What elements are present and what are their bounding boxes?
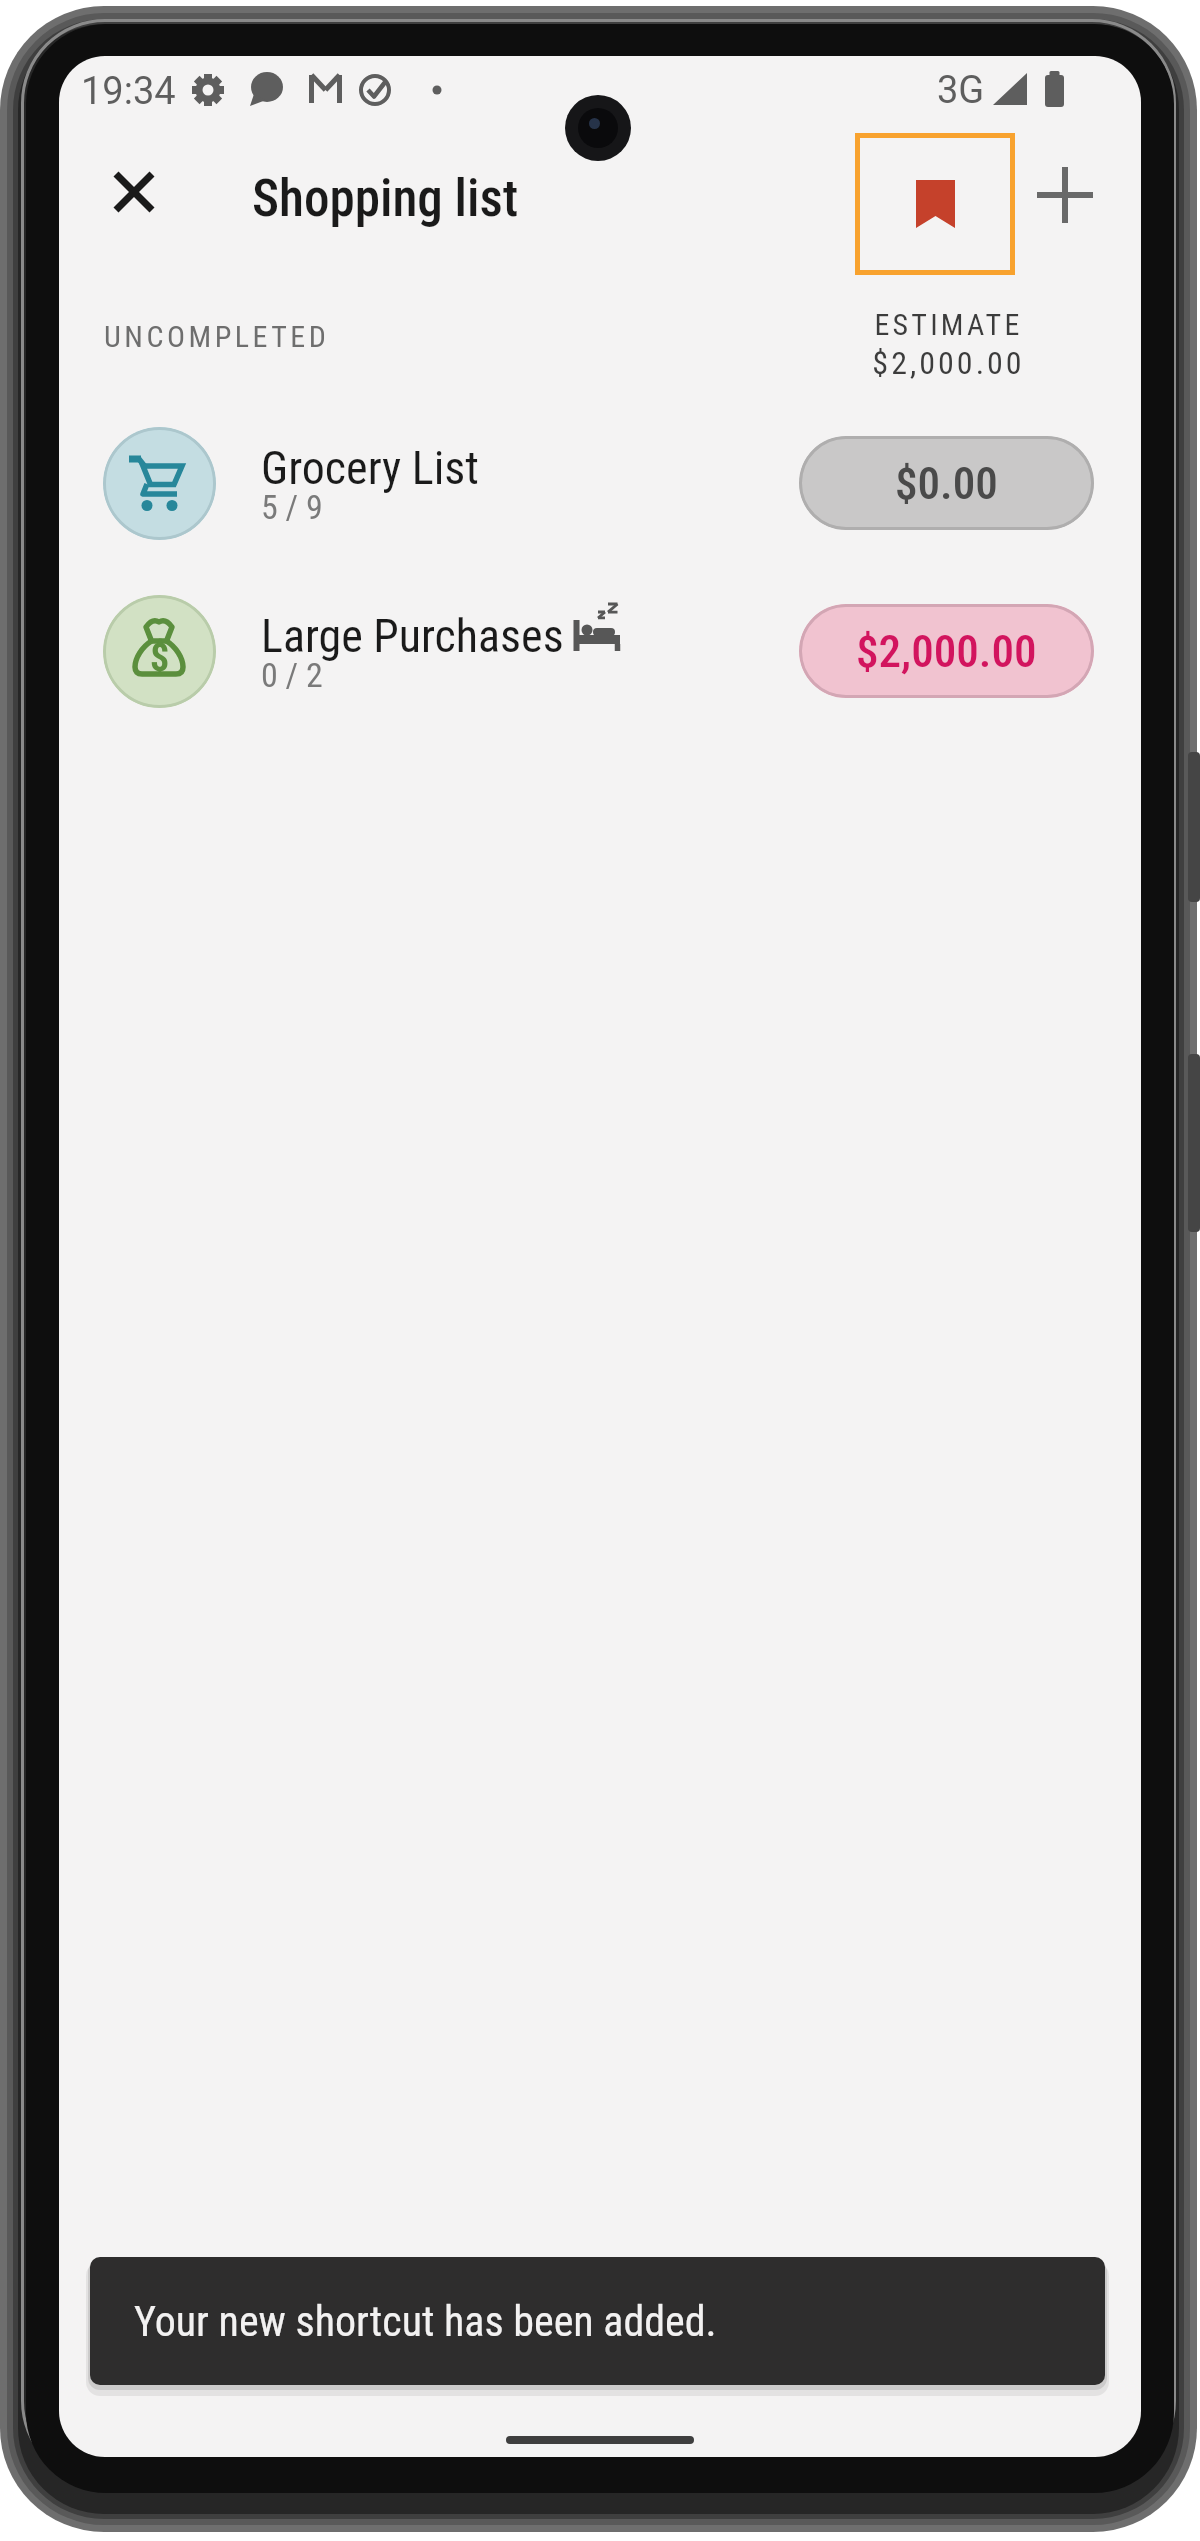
staticText: Your new shortcut has been added.	[134, 2297, 717, 2346]
button[interactable]	[99, 157, 169, 227]
staticText: 5 / 9	[261, 487, 323, 527]
staticText: $	[150, 636, 170, 681]
staticText: Shopping list	[252, 169, 519, 229]
button[interactable]: $	[59, 587, 1141, 715]
staticText: 19:34	[81, 69, 176, 114]
button[interactable]: $0.00	[799, 436, 1094, 530]
staticText: UNCOMPLETED	[104, 319, 330, 354]
staticText: ESTIMATE	[874, 307, 1023, 342]
button[interactable]	[1030, 160, 1100, 230]
staticText: 3G	[937, 68, 985, 113]
button[interactable]: Your new shortcut has been added.	[90, 2257, 1105, 2385]
button[interactable]	[855, 133, 1015, 275]
staticText: 0 / 2	[261, 655, 323, 695]
staticText: Grocery List	[261, 441, 479, 495]
staticText: $2,000.00	[872, 344, 1025, 382]
button[interactable]: $2,000.00	[799, 604, 1094, 698]
staticText: $2,000.00	[856, 625, 1037, 678]
staticText: $0.00	[895, 457, 998, 510]
staticText: Large Purchases	[261, 609, 564, 663]
button[interactable]: Grocery List	[59, 419, 1141, 547]
